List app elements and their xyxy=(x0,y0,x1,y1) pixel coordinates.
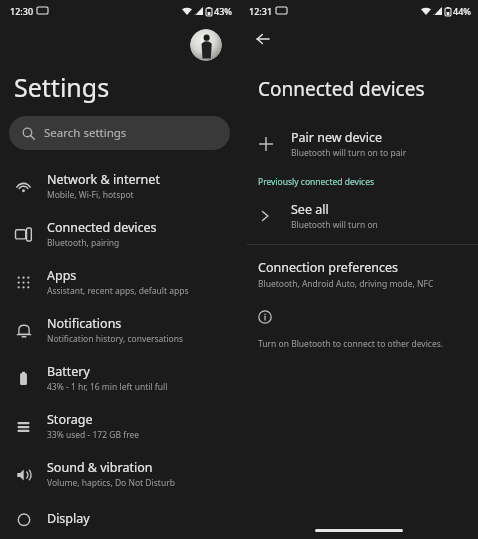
staticText: Bluetooth, Android Auto, driving mode, N… xyxy=(258,278,434,290)
button[interactable]: Search settings xyxy=(9,116,230,150)
staticText: Notification history, conversations xyxy=(47,333,184,345)
button[interactable]: See all xyxy=(239,196,478,236)
staticText: Sound & vibration xyxy=(47,459,153,476)
staticText: Connected devices xyxy=(47,219,157,236)
button[interactable]: Pair new device xyxy=(239,122,478,166)
button[interactable]: Sound & vibration xyxy=(0,450,239,498)
staticText: 12:30 xyxy=(10,5,34,17)
staticText: Battery xyxy=(47,363,90,380)
staticText: 43% - 1 hr, 16 min left until full xyxy=(47,381,168,393)
staticText: 44% xyxy=(453,5,471,17)
staticText: 43% xyxy=(214,5,232,17)
staticText: Pair new device xyxy=(291,129,382,146)
staticText: Connected devices xyxy=(258,76,425,102)
staticText: Network & internet xyxy=(47,171,160,188)
button[interactable]: Storage xyxy=(0,402,239,450)
button[interactable]: Connection preferences xyxy=(239,257,478,294)
staticText: Bluetooth will turn on xyxy=(291,219,378,231)
staticText: Mobile, Wi-Fi, hotspot xyxy=(47,189,134,201)
staticText: Turn on Bluetooth to connect to other de… xyxy=(258,338,444,350)
staticText: See all xyxy=(291,201,329,218)
staticText: Search settings xyxy=(44,125,127,141)
button[interactable]: Back xyxy=(251,27,275,51)
staticText: Apps xyxy=(47,267,77,284)
button[interactable]: Notifications xyxy=(0,306,239,354)
staticText: Storage xyxy=(47,411,93,428)
staticText: Settings xyxy=(14,70,110,104)
staticText: Bluetooth will turn on to pair xyxy=(291,147,407,159)
staticText: Volume, haptics, Do Not Disturb xyxy=(47,477,175,489)
staticText: 12:31 xyxy=(249,5,273,17)
button[interactable]: Battery xyxy=(0,354,239,402)
button[interactable]: Account avatar xyxy=(190,29,222,61)
button[interactable]: Apps xyxy=(0,258,239,306)
staticText: 33% used - 172 GB free xyxy=(47,429,140,441)
button[interactable]: Connected devices xyxy=(0,210,239,258)
staticText: Bluetooth, pairing xyxy=(47,237,120,249)
button[interactable]: Display xyxy=(0,498,239,539)
staticText: Assistant, recent apps, default apps xyxy=(47,285,189,297)
staticText: Previously connected devices xyxy=(258,176,375,188)
staticText: Display xyxy=(47,510,90,527)
button[interactable]: Network & internet xyxy=(0,162,239,210)
staticText: Notifications xyxy=(47,315,122,332)
staticText: Connection preferences xyxy=(258,259,398,276)
